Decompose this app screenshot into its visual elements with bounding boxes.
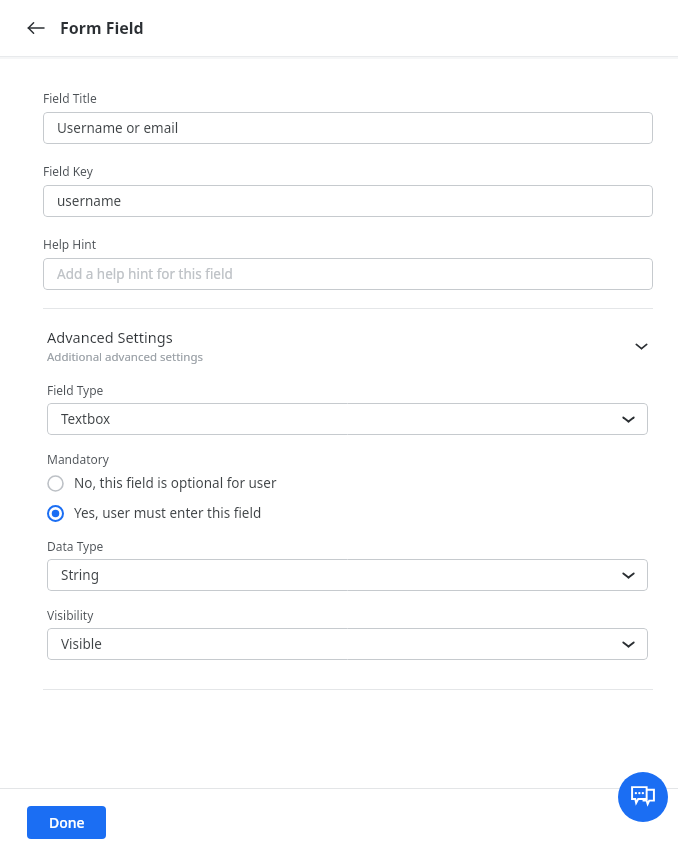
- staticText: Additional advanced settings: [47, 349, 203, 365]
- staticText: Visible: [61, 635, 102, 653]
- staticText: Data Type: [47, 538, 104, 554]
- button[interactable]: Back: [18, 10, 54, 46]
- button[interactable]: String: [47, 559, 648, 591]
- staticText: Advanced Settings: [47, 327, 173, 347]
- button[interactable]: Done: [27, 806, 106, 839]
- staticText: Yes, user must enter this field: [74, 504, 262, 522]
- button[interactable]: Username or email: [43, 112, 653, 144]
- button[interactable]: Advanced Settings: [0, 325, 678, 367]
- staticText: Textbox: [61, 410, 111, 428]
- button[interactable]: Yes, user must enter this field: [0, 501, 678, 525]
- staticText: Done: [49, 813, 85, 832]
- staticText: No, this field is optional for user: [74, 474, 277, 492]
- staticText: Field Title: [43, 90, 97, 106]
- staticText: username: [57, 192, 122, 210]
- button[interactable]: Add a help hint for this field: [43, 258, 653, 290]
- staticText: Help Hint: [43, 236, 96, 252]
- button[interactable]: Textbox: [47, 403, 648, 435]
- button[interactable]: No, this field is optional for user: [0, 471, 678, 495]
- staticText: Field Type: [47, 382, 104, 398]
- staticText: Form Field: [60, 17, 144, 39]
- staticText: Add a help hint for this field: [57, 265, 233, 283]
- staticText: Mandatory: [47, 451, 109, 467]
- staticText: Visibility: [47, 607, 94, 623]
- staticText: Field Key: [43, 163, 93, 179]
- button[interactable]: username: [43, 185, 653, 217]
- staticText: Username or email: [57, 119, 179, 137]
- staticText: String: [61, 566, 99, 584]
- button[interactable]: Chat support: [618, 772, 668, 822]
- button[interactable]: Visible: [47, 628, 648, 660]
